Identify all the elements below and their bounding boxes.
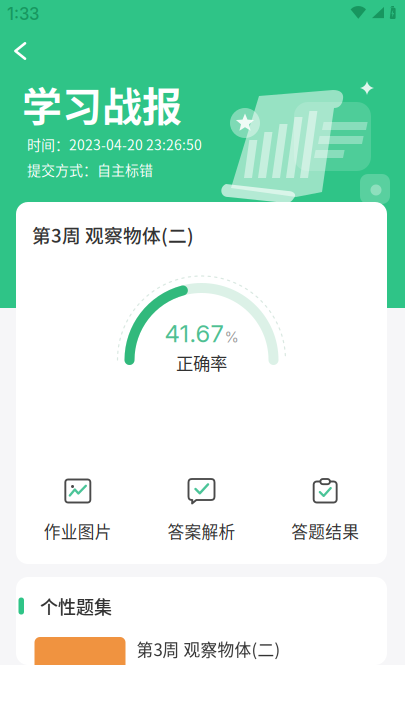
staticText: 学习战报 (22, 75, 182, 133)
staticText: 41.67 (164, 319, 223, 348)
button[interactable]: 答案解析 (140, 478, 263, 543)
button[interactable]: 作业图片 (16, 478, 140, 543)
staticText: 第3周 观察物体(二) (136, 637, 280, 661)
staticText: 作业图片 (44, 519, 112, 543)
staticText: 答案解析 (167, 519, 235, 543)
button[interactable]: Back (0, 20, 43, 70)
staticText: 第3周 观察物体(二) (32, 221, 194, 248)
staticText: 时间：2023-04-20 23:26:50 (27, 134, 202, 154)
staticText: 错题集 (43, 660, 94, 685)
staticText: % (224, 328, 238, 346)
staticText: 答题结果 (291, 519, 359, 543)
staticText: 提交方式：自主标错 (27, 159, 153, 179)
staticText: 个性题集 (40, 593, 112, 619)
button[interactable]: 答题结果 (263, 478, 387, 543)
staticText: 正确率 (176, 350, 227, 375)
button[interactable]: 错题集 (16, 577, 369, 635)
staticText: 1:33 (7, 4, 39, 24)
